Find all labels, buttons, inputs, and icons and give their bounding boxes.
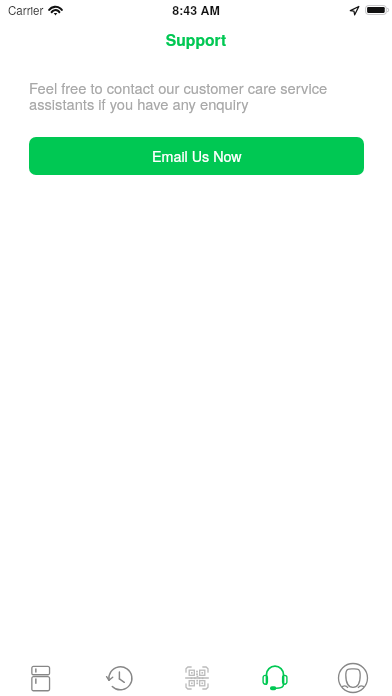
button[interactable]: Scan QR code [158, 640, 236, 696]
staticText: Carrier [8, 2, 44, 19]
staticText: Feel free to contact our customer care s… [29, 77, 339, 114]
button[interactable]: History [79, 640, 158, 696]
staticText: Email Us Now [152, 146, 242, 166]
staticText: Support [0, 28, 392, 50]
staticText: 8:43 AM [0, 1, 392, 19]
button[interactable]: Profile [314, 640, 392, 696]
button[interactable]: Email Us Now [29, 137, 364, 175]
button[interactable]: Fridge [0, 640, 79, 696]
button[interactable]: Support [236, 640, 314, 696]
